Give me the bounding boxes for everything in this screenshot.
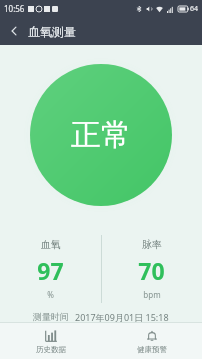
staticText: 10:56 [4, 3, 25, 14]
staticText: bpm [143, 289, 161, 300]
button[interactable]: 历史数据 [0, 323, 101, 359]
button[interactable]: 脉率 [101, 238, 202, 300]
staticText: 测量时间 [33, 311, 69, 322]
button[interactable]: 健康预警 [101, 323, 202, 359]
staticText: % [47, 289, 54, 300]
button[interactable]: 正常 [30, 64, 172, 206]
staticText: 历史数据 [36, 345, 66, 354]
staticText: 血氧测量 [28, 24, 76, 39]
staticText: 正常 [71, 116, 131, 154]
staticText: 64 [190, 4, 199, 14]
staticText: 脉率 [142, 238, 162, 251]
staticText: 97 [37, 255, 64, 286]
staticText: 70 [138, 255, 165, 286]
button[interactable]: 血氧 [0, 238, 101, 300]
staticText: 血氧 [41, 238, 61, 251]
staticText: 2017年09月01日 15:18 [75, 311, 169, 322]
button[interactable]: Back [0, 17, 28, 45]
staticText: 健康预警 [137, 345, 167, 354]
